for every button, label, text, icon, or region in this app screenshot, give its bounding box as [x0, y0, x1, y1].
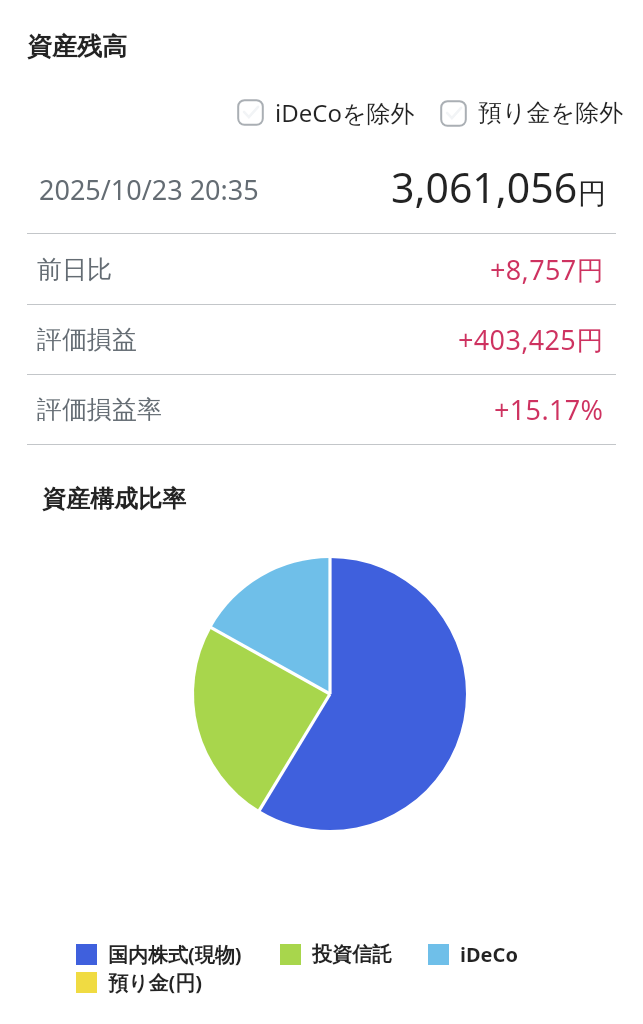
staticText: iDeCo: [460, 941, 518, 968]
staticText: 円: [578, 176, 606, 211]
button[interactable]: 評価損益率: [0, 375, 643, 444]
button[interactable]: 預り金(円): [76, 969, 203, 996]
staticText: iDeCoを除外: [275, 96, 415, 129]
button[interactable]: 投資信託: [280, 942, 392, 967]
staticText: 3,061,056: [391, 159, 578, 215]
staticText: 資産残高: [27, 31, 127, 62]
button[interactable]: iDeCoを除外: [237, 96, 415, 129]
staticText: +8,757円: [490, 251, 604, 288]
staticText: +403,425円: [458, 321, 604, 358]
staticText: 国内株式(現物): [108, 941, 242, 968]
staticText: 2025/10/23 20:35: [39, 171, 259, 208]
button[interactable]: 預り金を除外: [440, 98, 624, 128]
staticText: 前日比: [37, 254, 112, 285]
staticText: 投資信託: [312, 942, 392, 967]
staticText: 評価損益率: [37, 394, 162, 425]
staticText: 評価損益: [37, 324, 137, 355]
staticText: +15.17%: [494, 391, 604, 428]
button[interactable]: 国内株式(現物): [76, 941, 242, 968]
button[interactable]: 前日比: [0, 234, 643, 304]
staticText: 預り金を除外: [478, 98, 624, 128]
button[interactable]: 評価損益: [0, 305, 643, 374]
staticText: 資産構成比率: [42, 484, 186, 514]
button[interactable]: iDeCo: [428, 941, 518, 968]
staticText: 預り金(円): [108, 969, 203, 996]
